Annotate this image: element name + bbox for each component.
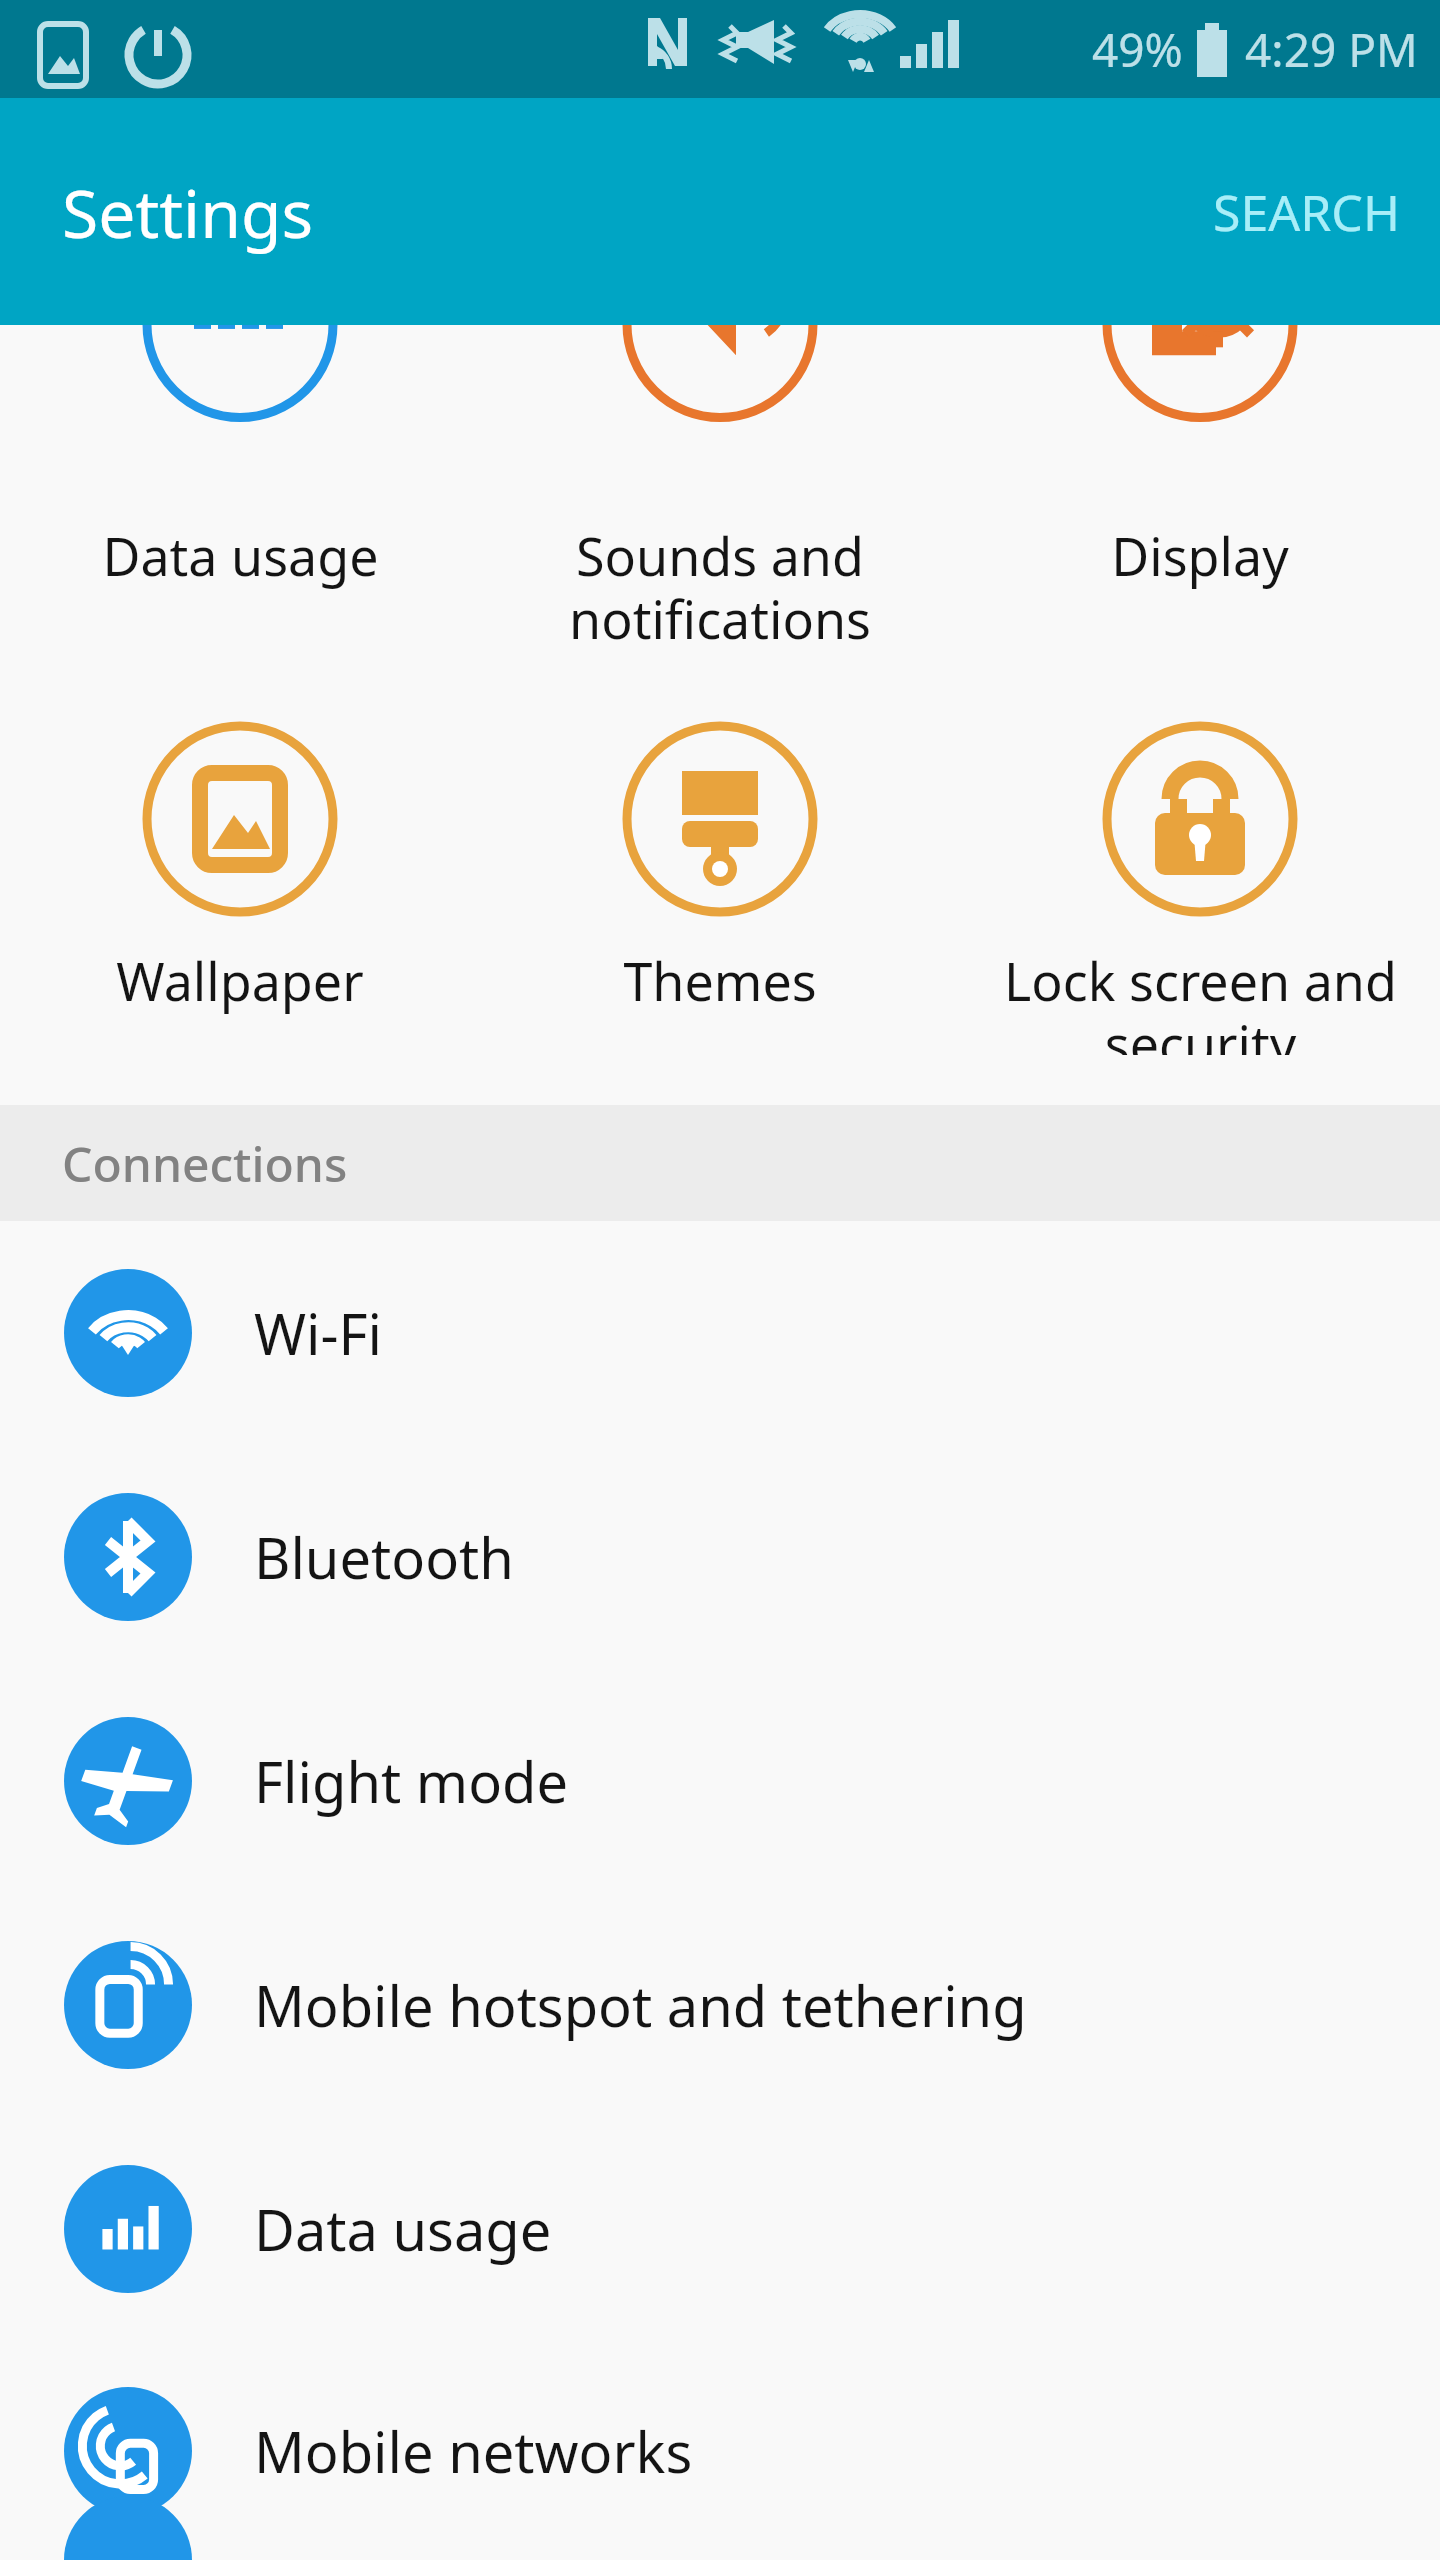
button[interactable]: Data usage xyxy=(0,325,480,705)
button[interactable]: Wi-Fi xyxy=(0,1221,1440,1445)
staticText: Bluetooth xyxy=(254,1519,514,1595)
staticText: Lock screen and security xyxy=(1004,945,1397,1055)
button[interactable]: Display xyxy=(960,325,1440,705)
staticText: Mobile networks xyxy=(254,2413,693,2489)
staticText: Wi-Fi xyxy=(254,1295,383,1371)
button[interactable]: Mobile hotspot and tethering xyxy=(0,1893,1440,2117)
staticText: Themes xyxy=(623,945,817,1016)
staticText: Flight mode xyxy=(254,1743,569,1819)
button[interactable]: Data usage xyxy=(0,2117,1440,2341)
staticText: Settings xyxy=(62,167,314,257)
staticText: SEARCH xyxy=(1213,178,1400,246)
staticText: Data usage xyxy=(254,2191,552,2267)
staticText: Display xyxy=(1111,520,1289,591)
staticText: Wallpaper xyxy=(116,945,364,1016)
staticText: Mobile hotspot and tethering xyxy=(254,1967,1027,2043)
button[interactable]: Wallpaper xyxy=(0,705,480,1055)
button[interactable]: Mobile networks xyxy=(0,2341,1440,2560)
button[interactable]: Lock screen and security xyxy=(960,705,1440,1055)
staticText: Sounds and notifications xyxy=(569,520,871,654)
button[interactable]: SEARCH xyxy=(1173,138,1440,286)
button[interactable]: Themes xyxy=(480,705,960,1055)
staticText: 4:29 PM xyxy=(1245,18,1418,81)
button[interactable]: Sounds and notifications xyxy=(480,325,960,705)
button[interactable]: Flight mode xyxy=(0,1669,1440,1893)
staticText: Connections xyxy=(62,1131,348,1196)
staticText: Data usage xyxy=(102,520,379,591)
staticText: 49% xyxy=(1092,18,1183,81)
button[interactable]: Bluetooth xyxy=(0,1445,1440,1669)
